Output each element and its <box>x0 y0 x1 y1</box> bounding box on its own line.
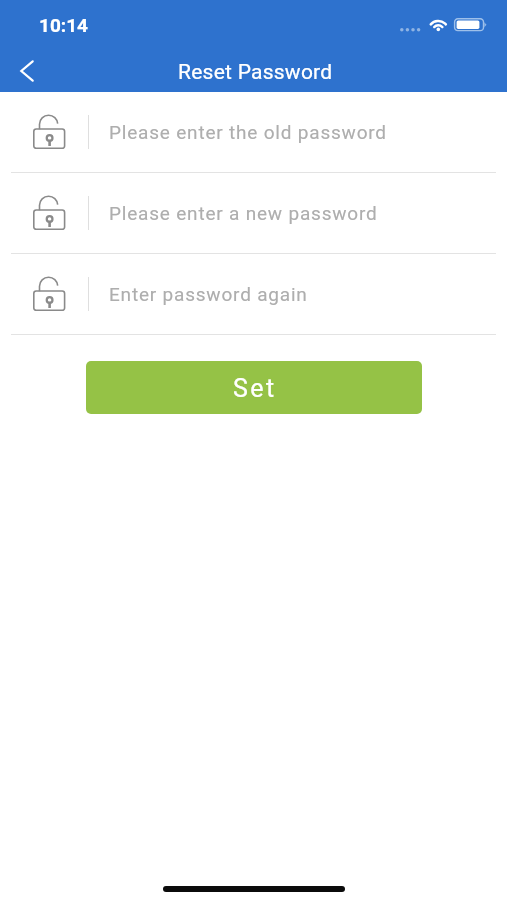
button[interactable]: Please enter the old password <box>0 92 507 172</box>
button[interactable]: Please enter a new password <box>0 173 507 253</box>
staticText: Reset Password <box>178 60 333 85</box>
staticText: 10:14 <box>39 14 88 36</box>
button[interactable]: Back <box>5 49 49 93</box>
staticText: Please enter the old password <box>109 121 387 143</box>
button[interactable]: Enter password again <box>0 254 507 334</box>
staticText: Set <box>233 374 277 403</box>
button[interactable]: Set <box>86 361 422 414</box>
staticText: Enter password again <box>109 283 308 305</box>
staticText: Please enter a new password <box>109 202 378 224</box>
